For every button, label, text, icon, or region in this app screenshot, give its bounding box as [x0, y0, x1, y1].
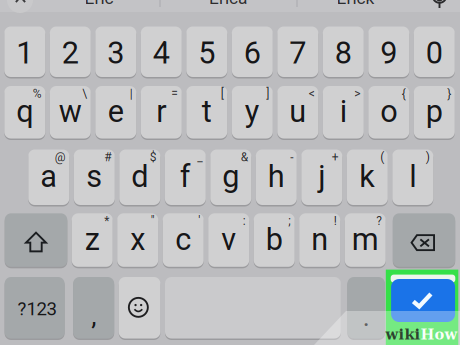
- staticText: $: [150, 150, 157, 164]
- staticText: q: [16, 93, 33, 129]
- button[interactable]: Enter: [391, 279, 455, 322]
- staticText: k: [359, 158, 375, 194]
- staticText: ]: [266, 87, 269, 101]
- button[interactable]: x: [117, 213, 158, 267]
- button[interactable]: t: [186, 86, 227, 138]
- staticText: l: [409, 158, 416, 194]
- button[interactable]: Shift: [5, 213, 67, 267]
- staticText: 1: [16, 35, 33, 71]
- staticText: b: [266, 222, 283, 257]
- staticText: e: [108, 93, 124, 129]
- button[interactable]: q: [4, 86, 45, 138]
- button[interactable]: p: [414, 86, 455, 138]
- button[interactable]: f: [165, 149, 206, 205]
- button[interactable]: Delete: [393, 213, 455, 267]
- staticText: !: [334, 214, 337, 228]
- staticText: >: [354, 87, 360, 101]
- staticText: Eric: [84, 0, 113, 8]
- staticText: ,: [91, 300, 96, 331]
- staticText: #: [104, 150, 111, 164]
- button[interactable]: k: [347, 149, 388, 205]
- staticText: +: [332, 150, 339, 164]
- button[interactable]: n: [299, 213, 340, 267]
- staticText: ": [151, 214, 155, 228]
- button[interactable]: a: [28, 149, 69, 205]
- button[interactable]: y: [232, 86, 273, 138]
- staticText: a: [40, 158, 57, 194]
- staticText: p: [426, 93, 443, 129]
- button[interactable]: l: [392, 149, 433, 205]
- staticText: .: [363, 301, 370, 332]
- staticText: j: [318, 158, 325, 194]
- button[interactable]: 5: [186, 26, 227, 77]
- staticText: wiki: [385, 326, 420, 343]
- staticText: 5: [198, 35, 215, 71]
- button[interactable]: Erica: [209, 0, 247, 8]
- staticText: 8: [335, 35, 352, 71]
- button[interactable]: d: [119, 149, 160, 205]
- staticText: &: [241, 150, 248, 164]
- button[interactable]: g: [210, 149, 251, 205]
- button[interactable]: e: [95, 86, 136, 138]
- button[interactable]: u: [277, 86, 318, 138]
- button[interactable]: Erick: [336, 0, 374, 8]
- button[interactable]: 6: [232, 26, 273, 77]
- button[interactable]: j: [301, 149, 342, 205]
- button[interactable]: o: [368, 86, 409, 138]
- button[interactable]: m: [345, 213, 386, 267]
- staticText: t: [202, 93, 212, 129]
- staticText: y: [245, 93, 260, 129]
- staticText: Erick: [336, 0, 374, 8]
- staticText: 2: [62, 35, 79, 71]
- staticText: }: [447, 87, 451, 101]
- staticText: d: [131, 158, 148, 194]
- staticText: m: [352, 222, 379, 257]
- button[interactable]: 9: [368, 26, 409, 77]
- button[interactable]: 0: [414, 26, 455, 77]
- button[interactable]: 1: [4, 26, 45, 77]
- button[interactable]: Period: [347, 277, 385, 338]
- button[interactable]: 4: [141, 26, 182, 77]
- staticText: 0: [426, 35, 443, 71]
- staticText: :: [243, 214, 246, 228]
- button[interactable]: c: [163, 213, 204, 267]
- button[interactable]: s: [74, 149, 115, 205]
- staticText: Erica: [209, 0, 247, 8]
- staticText: @: [55, 150, 66, 164]
- staticText: (: [380, 150, 384, 164]
- staticText: |: [130, 87, 133, 101]
- staticText: w: [59, 93, 82, 129]
- button[interactable]: w: [50, 86, 91, 138]
- button[interactable]: 3: [95, 26, 136, 77]
- staticText: c: [175, 222, 191, 257]
- button[interactable]: Emoji: [119, 277, 160, 338]
- staticText: _: [197, 150, 202, 164]
- staticText: v: [221, 222, 236, 257]
- staticText: -: [290, 150, 293, 164]
- button[interactable]: ?123: [5, 277, 65, 338]
- button[interactable]: h: [256, 149, 297, 205]
- button[interactable]: i: [323, 86, 364, 138]
- staticText: =: [171, 87, 178, 101]
- staticText: 7: [289, 35, 306, 71]
- button[interactable]: r: [141, 86, 182, 138]
- staticText: g: [222, 158, 239, 194]
- button[interactable]: b: [254, 213, 295, 267]
- button[interactable]: Comma: [73, 277, 114, 338]
- button[interactable]: 7: [277, 26, 318, 77]
- button[interactable]: 8: [323, 26, 364, 77]
- button[interactable]: z: [72, 213, 113, 267]
- button[interactable]: Eric: [84, 0, 113, 8]
- button[interactable]: 2: [50, 26, 91, 77]
- staticText: x: [130, 222, 145, 257]
- staticText: z: [85, 222, 100, 257]
- staticText: ?: [376, 214, 382, 228]
- staticText: o: [380, 93, 397, 129]
- staticText: *: [104, 214, 109, 228]
- staticText: {: [402, 87, 406, 101]
- staticText: ): [426, 150, 430, 164]
- button[interactable]: v: [208, 213, 249, 267]
- staticText: r: [156, 93, 166, 129]
- staticText: ': [198, 214, 200, 228]
